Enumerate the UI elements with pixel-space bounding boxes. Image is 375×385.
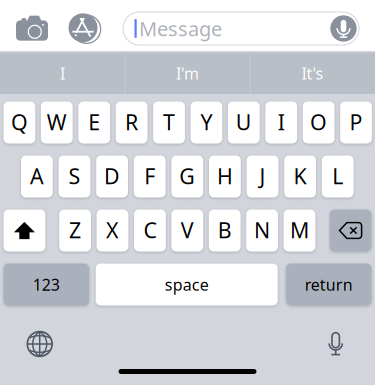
staticText: H [217, 162, 233, 190]
staticText: D [104, 162, 120, 190]
staticText: return [305, 274, 353, 295]
button[interactable]: I [0, 52, 124, 94]
staticText: M [290, 216, 309, 244]
staticText: O [310, 108, 327, 136]
button[interactable]: J [0, 0, 375, 385]
button[interactable]: R [0, 0, 375, 385]
staticText: I [278, 108, 285, 136]
staticText: Q [11, 108, 28, 136]
staticText: X [106, 216, 119, 244]
button[interactable]: App Store [63, 7, 107, 51]
staticText: It's [301, 63, 323, 84]
button[interactable]: return [0, 0, 375, 385]
staticText: K [294, 162, 307, 190]
button[interactable]: Camera [10, 6, 54, 50]
button[interactable]: T [0, 0, 375, 385]
button[interactable]: P [0, 0, 375, 385]
staticText: R [125, 108, 138, 136]
staticText: B [218, 216, 232, 244]
button[interactable]: B [0, 0, 375, 385]
staticText: A [30, 162, 44, 190]
staticText: J [259, 162, 265, 190]
button[interactable]: A [0, 0, 375, 385]
staticText: U [236, 108, 252, 136]
button[interactable]: Next keyboard [18, 322, 62, 366]
button[interactable]: O [0, 0, 375, 385]
button[interactable]: U [0, 0, 375, 385]
staticText: space [165, 274, 209, 295]
staticText: I'm [176, 63, 199, 84]
button[interactable]: I [0, 0, 375, 385]
staticText: I [60, 63, 65, 84]
button[interactable]: F [0, 0, 375, 385]
staticText: Y [200, 108, 212, 136]
staticText: N [254, 216, 270, 244]
button[interactable]: G [0, 0, 375, 385]
button[interactable]: Dictation [314, 322, 358, 366]
staticText: E [88, 108, 100, 136]
button[interactable]: Z [0, 0, 375, 385]
staticText: S [68, 162, 80, 190]
staticText: W [47, 108, 67, 136]
button[interactable]: Message [123, 12, 359, 45]
button[interactable]: space [0, 0, 375, 385]
staticText: Message [139, 15, 222, 42]
button[interactable]: Y [0, 0, 375, 385]
button[interactable]: N [0, 0, 375, 385]
staticText: F [144, 162, 155, 190]
button[interactable]: L [0, 0, 375, 385]
button[interactable]: H [0, 0, 375, 385]
button[interactable]: X [0, 0, 375, 385]
button[interactable]: S [0, 0, 375, 385]
button[interactable]: V [0, 0, 375, 385]
button[interactable]: I'm [125, 52, 249, 94]
button[interactable]: Q [0, 0, 375, 385]
staticText: T [163, 108, 175, 136]
button[interactable]: Delete [0, 0, 375, 385]
button[interactable]: W [0, 0, 375, 385]
button[interactable]: C [0, 0, 375, 385]
button[interactable]: E [0, 0, 375, 385]
staticText: P [349, 108, 362, 136]
staticText: V [181, 216, 194, 244]
button[interactable]: 123 [0, 0, 375, 385]
button[interactable]: M [0, 0, 375, 385]
staticText: G [179, 162, 195, 190]
button[interactable]: Shift [0, 0, 375, 385]
staticText: L [332, 162, 343, 190]
staticText: Z [69, 216, 81, 244]
button[interactable]: D [0, 0, 375, 385]
staticText: C [143, 216, 156, 244]
staticText: 123 [33, 274, 60, 295]
button[interactable]: It's [250, 52, 374, 94]
button[interactable]: K [0, 0, 375, 385]
